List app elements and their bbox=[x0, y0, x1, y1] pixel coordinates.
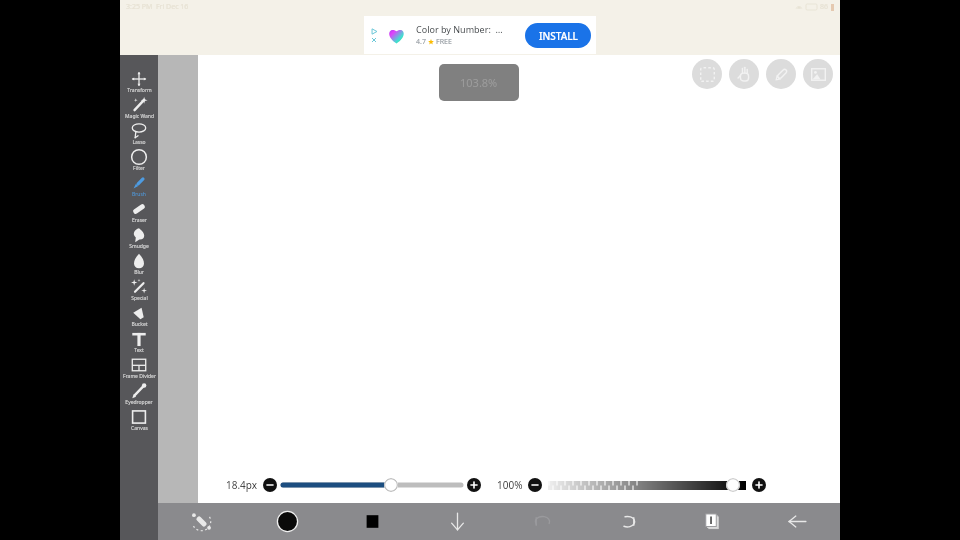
staticText: Transform bbox=[127, 87, 152, 94]
button[interactable]: Text bbox=[120, 329, 158, 355]
staticText: Smudge bbox=[129, 243, 149, 250]
staticText: Magic Wand bbox=[125, 113, 154, 120]
button[interactable] bbox=[548, 477, 746, 493]
staticText: FREE bbox=[436, 37, 452, 47]
button[interactable]: Filter bbox=[120, 147, 158, 173]
staticText: 3:25 PM Fri Dec 16 bbox=[126, 2, 189, 12]
staticText: 4.7 bbox=[416, 37, 426, 47]
button[interactable]: Hand tool bbox=[729, 59, 759, 89]
button[interactable]: Pencil bbox=[766, 59, 796, 89]
button[interactable]: Increase brush size bbox=[467, 478, 481, 492]
button[interactable]: INSTALL bbox=[525, 23, 591, 48]
staticText: Eyedropper bbox=[125, 399, 153, 406]
button[interactable]: Canvas bbox=[120, 407, 158, 433]
button[interactable]: Blur bbox=[120, 251, 158, 277]
button[interactable]: Layer transform bbox=[158, 503, 244, 540]
staticText: 18.4px bbox=[226, 478, 258, 492]
button[interactable]: Brush size 18.4 bbox=[244, 503, 330, 540]
button[interactable]: Eyedropper bbox=[120, 381, 158, 407]
staticText: Text bbox=[134, 347, 144, 354]
staticText: Brush bbox=[132, 191, 146, 198]
button[interactable]: Back bbox=[755, 503, 840, 540]
staticText: Special bbox=[131, 295, 148, 302]
button[interactable]: Color by Number: … bbox=[364, 16, 596, 54]
button[interactable] bbox=[283, 477, 461, 493]
button[interactable]: Image bbox=[803, 59, 833, 89]
button[interactable]: Increase opacity bbox=[752, 478, 766, 492]
button[interactable]: Eraser bbox=[120, 199, 158, 225]
button[interactable]: Layers bbox=[670, 503, 755, 540]
staticText: INSTALL bbox=[539, 29, 578, 43]
staticText: 100% bbox=[497, 478, 523, 492]
staticText: 86 bbox=[820, 2, 829, 12]
button[interactable]: Bucket bbox=[120, 303, 158, 329]
staticText: Lasso bbox=[132, 139, 146, 146]
staticText: Bucket bbox=[131, 321, 148, 328]
staticText: 103.8% bbox=[460, 75, 498, 90]
staticText: Canvas bbox=[131, 425, 148, 432]
button[interactable]: Brush bbox=[120, 173, 158, 199]
button[interactable]: Transform bbox=[120, 69, 158, 95]
staticText: Blur bbox=[134, 269, 144, 276]
button[interactable]: Magic Wand bbox=[120, 95, 158, 121]
button[interactable]: Redo bbox=[585, 503, 670, 540]
staticText: Frame Divider bbox=[123, 373, 156, 380]
button[interactable]: Decrease brush size bbox=[263, 478, 277, 492]
button[interactable]: Decrease opacity bbox=[528, 478, 542, 492]
staticText: Filter bbox=[133, 165, 145, 172]
button[interactable]: Color bbox=[330, 503, 415, 540]
button[interactable]: Selection bbox=[692, 59, 722, 89]
staticText: Color by Number: … bbox=[416, 23, 503, 35]
button[interactable]: Frame Divider bbox=[120, 355, 158, 381]
staticText: Eraser bbox=[132, 217, 147, 224]
button[interactable]: Special bbox=[120, 277, 158, 303]
button[interactable]: Smudge bbox=[120, 225, 158, 251]
button[interactable]: Download bbox=[415, 503, 500, 540]
button[interactable]: Lasso bbox=[120, 121, 158, 147]
